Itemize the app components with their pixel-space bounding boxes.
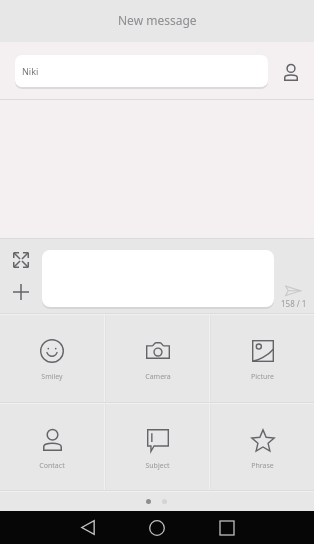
button[interactable]: Add attachment	[7, 278, 35, 306]
button[interactable]: Picture	[211, 315, 314, 402]
button[interactable]: Back	[67, 511, 109, 544]
staticText: 158 / 1	[281, 298, 307, 309]
button[interactable]: Niki	[15, 55, 268, 87]
button[interactable]: Expand	[7, 246, 35, 274]
button[interactable]: Select contact	[275, 44, 307, 101]
button[interactable]: Camera	[106, 315, 209, 402]
staticText: New message	[118, 12, 197, 28]
button[interactable]: Smiley	[0, 315, 104, 402]
button[interactable]: Home	[136, 511, 178, 544]
staticText: Picture	[251, 372, 274, 382]
button[interactable]: Contact	[0, 404, 104, 490]
staticText: Contact	[39, 461, 65, 471]
button[interactable]: Phrase	[211, 404, 314, 490]
staticText: Phrase	[251, 461, 274, 471]
staticText: Niki	[22, 65, 39, 77]
staticText: Subject	[145, 461, 170, 471]
button[interactable]: Recent apps	[206, 511, 248, 544]
staticText: Camera	[145, 372, 171, 382]
button[interactable]: Subject	[106, 404, 209, 490]
button[interactable]: Send	[278, 279, 308, 301]
staticText: Smiley	[41, 372, 63, 382]
